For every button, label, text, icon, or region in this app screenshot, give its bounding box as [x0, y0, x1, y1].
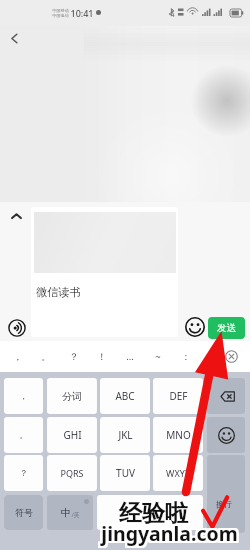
staticText: 中国电信 [52, 13, 69, 18]
button[interactable]: ， [4, 341, 32, 372]
button[interactable]: ~ [144, 341, 172, 372]
button[interactable]: ， [4, 378, 43, 414]
staticText: ABC [115, 389, 135, 403]
button[interactable]: PQRS [47, 455, 97, 491]
staticText: jingyanla.com [101, 518, 238, 545]
staticText: ： [181, 351, 191, 363]
staticText: 经验啦 [119, 499, 188, 528]
staticText: MNO [166, 428, 191, 442]
button[interactable]: ABC [100, 378, 150, 414]
staticText: jingyanla.com [103, 522, 240, 549]
button[interactable]: 符号 [4, 495, 43, 530]
staticText: 经验啦 [117, 497, 186, 526]
staticText: 微信读书 [36, 285, 81, 299]
staticText: ！ [97, 351, 107, 363]
button[interactable]: 。 [4, 417, 43, 453]
staticText: jingyanla.com [101, 522, 238, 549]
button[interactable]: Backspace [207, 378, 245, 414]
staticText: TUV [116, 466, 135, 480]
button[interactable]: MNO [153, 417, 203, 453]
button[interactable]: Voice input [6, 317, 27, 338]
button[interactable]: WXYZ [153, 455, 203, 491]
staticText: DEF [169, 389, 188, 403]
button[interactable]: TUV [100, 455, 150, 491]
staticText: 经验啦 [119, 497, 188, 526]
staticText: 中国移动 [52, 8, 69, 13]
staticText: GHI [63, 428, 82, 442]
staticText: PQRS [60, 467, 84, 479]
button[interactable]: 换行 [207, 455, 245, 533]
staticText: 经验啦 [117, 499, 186, 528]
staticText: WXYZ [166, 467, 190, 479]
staticText: jingyanla.com [103, 518, 240, 545]
staticText: 换行 [216, 499, 232, 509]
staticText: ！ [19, 507, 28, 518]
button[interactable]: JKL [100, 417, 150, 453]
staticText: 经验啦 [119, 501, 188, 530]
staticText: 分词 [62, 390, 82, 403]
staticText: 经验啦 [121, 499, 190, 528]
button[interactable]: 微信读书 [31, 207, 178, 337]
staticText: 。 [19, 430, 28, 441]
staticText: 符号 [15, 507, 33, 518]
staticText: 。 [41, 351, 51, 363]
staticText: 经验啦 [121, 501, 190, 530]
staticText: 经验啦 [117, 501, 186, 530]
button[interactable]: Emoji [207, 417, 245, 453]
button[interactable]: … [116, 341, 144, 372]
staticText: jingyanla.com [99, 518, 236, 545]
button[interactable]: GHI [47, 417, 97, 453]
staticText: ？ [19, 468, 28, 479]
staticText: JKL [118, 428, 133, 442]
button[interactable]: ？ [4, 455, 43, 491]
button[interactable]: Space [97, 495, 203, 530]
button[interactable]: ！ [88, 341, 116, 372]
staticText: 10:41 [70, 7, 94, 19]
button[interactable]: 发送 [208, 317, 245, 339]
button[interactable]: ！ [4, 495, 43, 530]
button[interactable]: 中 [47, 495, 93, 530]
staticText: ？ [69, 351, 79, 363]
staticText: ~ [155, 350, 161, 363]
button[interactable]: 。 [32, 341, 60, 372]
staticText: jingyanla.com [99, 522, 236, 549]
staticText: ， [13, 351, 23, 363]
staticText: 中 [61, 506, 71, 519]
staticText: ， [19, 391, 28, 402]
staticText: jingyanla.com [103, 520, 240, 547]
button[interactable]: Collapse [6, 206, 26, 226]
staticText: … [126, 350, 134, 363]
staticText: /英 [71, 511, 80, 519]
staticText: 发送 [217, 322, 236, 334]
staticText: jingyanla.com [101, 520, 238, 547]
button[interactable]: 分词 [47, 378, 97, 414]
button[interactable]: Close keyboard [224, 349, 239, 364]
button[interactable]: Emoji [184, 316, 206, 338]
button[interactable]: ？ [60, 341, 88, 372]
staticText: jingyanla.com [99, 520, 236, 547]
button[interactable]: ： [172, 341, 200, 372]
button[interactable]: DEF [153, 378, 203, 414]
staticText: 经验啦 [121, 497, 190, 526]
button[interactable]: Back [3, 27, 25, 49]
